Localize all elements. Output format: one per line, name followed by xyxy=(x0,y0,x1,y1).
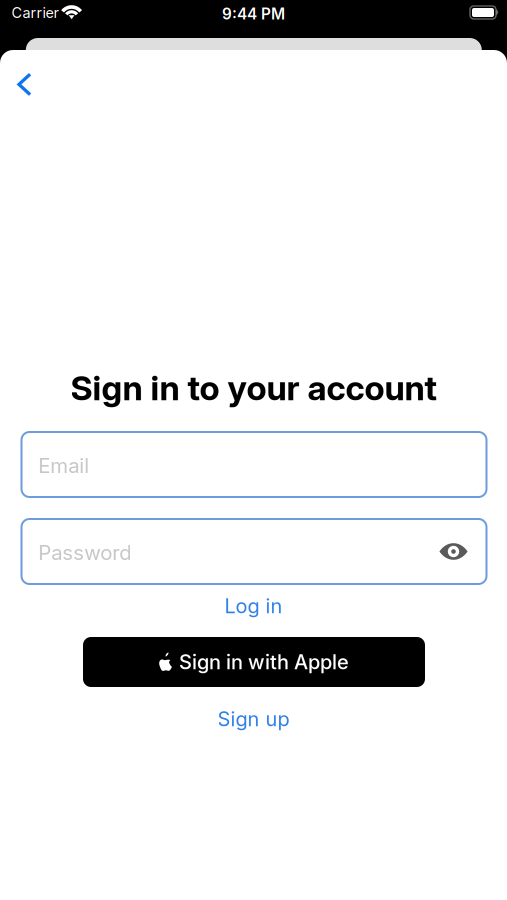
staticText: Log in xyxy=(224,594,282,618)
button[interactable]: Show password xyxy=(433,529,473,573)
staticText: Email xyxy=(38,453,89,478)
button[interactable]: Sign in with Apple xyxy=(83,637,425,687)
staticText: Sign up xyxy=(217,707,289,731)
button[interactable]: Back xyxy=(2,62,46,106)
staticText: Sign in to your account xyxy=(70,367,436,408)
staticText: Carrier xyxy=(11,4,58,21)
staticText: Password xyxy=(38,540,131,565)
button[interactable]: Sign up xyxy=(201,703,305,735)
button[interactable]: Log in xyxy=(205,590,301,622)
staticText: Sign in with Apple xyxy=(179,650,349,674)
staticText: 9:44 PM xyxy=(222,5,285,23)
